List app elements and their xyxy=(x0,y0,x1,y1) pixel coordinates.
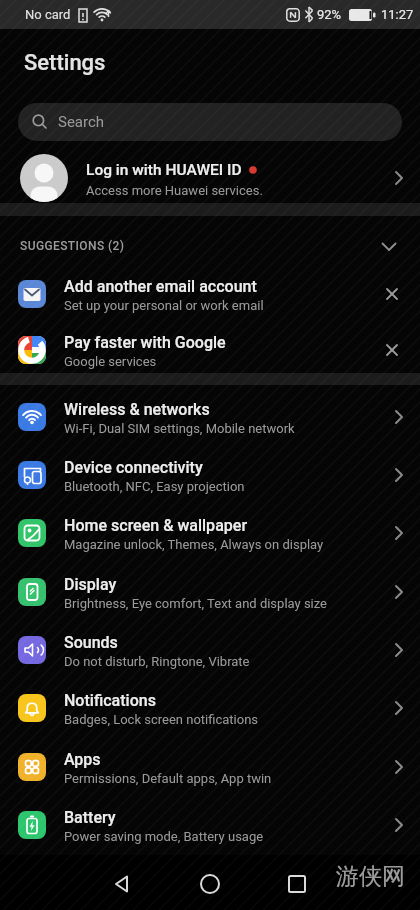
staticText: Access more Huawei services. xyxy=(86,183,263,198)
button[interactable]: Home screen & wallpaper xyxy=(0,504,420,562)
staticText: Google services xyxy=(64,354,157,369)
staticText: Permissions, Default apps, App twin xyxy=(64,771,272,786)
staticText: Search xyxy=(58,113,105,131)
staticText: 11:27 xyxy=(381,7,414,22)
button[interactable] xyxy=(190,864,230,904)
staticText: 游侠网 xyxy=(336,862,405,891)
staticText: SUGGESTIONS (2) xyxy=(20,239,125,253)
staticText: Set up your personal or work email xyxy=(64,298,264,313)
button[interactable] xyxy=(102,864,142,904)
button[interactable]: Notifications xyxy=(0,679,420,737)
staticText: Power saving mode, Battery usage xyxy=(64,829,264,844)
staticText: Log in with HUAWEI ID xyxy=(86,161,242,179)
staticText: Home screen & wallpaper xyxy=(64,516,248,535)
button[interactable]: Battery xyxy=(0,796,420,854)
staticText: Bluetooth, NFC, Easy projection xyxy=(64,479,245,494)
button[interactable]: Device connectivity xyxy=(0,446,420,504)
staticText: Wireless & networks xyxy=(64,400,210,419)
staticText: Pay faster with Google xyxy=(64,333,226,352)
button[interactable]: Pay faster with Google xyxy=(0,321,420,379)
button[interactable] xyxy=(277,864,317,904)
button[interactable]: Apps xyxy=(0,738,420,796)
staticText: 92% xyxy=(317,7,342,22)
staticText: Notifications xyxy=(64,691,156,710)
button[interactable]: Add another email account xyxy=(0,265,420,323)
button[interactable]: Log in with HUAWEI ID xyxy=(0,150,420,206)
button[interactable]: Sounds xyxy=(0,621,420,679)
staticText: Badges, Lock screen notifications xyxy=(64,712,259,727)
staticText: Apps xyxy=(64,750,101,769)
button[interactable]: Search xyxy=(18,103,402,141)
button[interactable]: Display xyxy=(0,563,420,621)
staticText: Magazine unlock, Themes, Always on displ… xyxy=(64,537,324,552)
staticText: Do not disturb, Ringtone, Vibrate xyxy=(64,654,250,669)
staticText: No card xyxy=(25,7,71,22)
staticText: Brightness, Eye comfort, Text and displa… xyxy=(64,596,328,611)
staticText: Add another email account xyxy=(64,277,257,296)
button[interactable]: SUGGESTIONS (2) xyxy=(0,232,420,262)
staticText: Display xyxy=(64,575,117,594)
staticText: Device connectivity xyxy=(64,458,203,477)
staticText: Wi-Fi, Dual SIM settings, Mobile network xyxy=(64,421,295,436)
staticText: Battery xyxy=(64,808,116,827)
button[interactable]: Wireless & networks xyxy=(0,388,420,446)
staticText: Sounds xyxy=(64,633,118,652)
staticText: Settings xyxy=(24,50,106,76)
